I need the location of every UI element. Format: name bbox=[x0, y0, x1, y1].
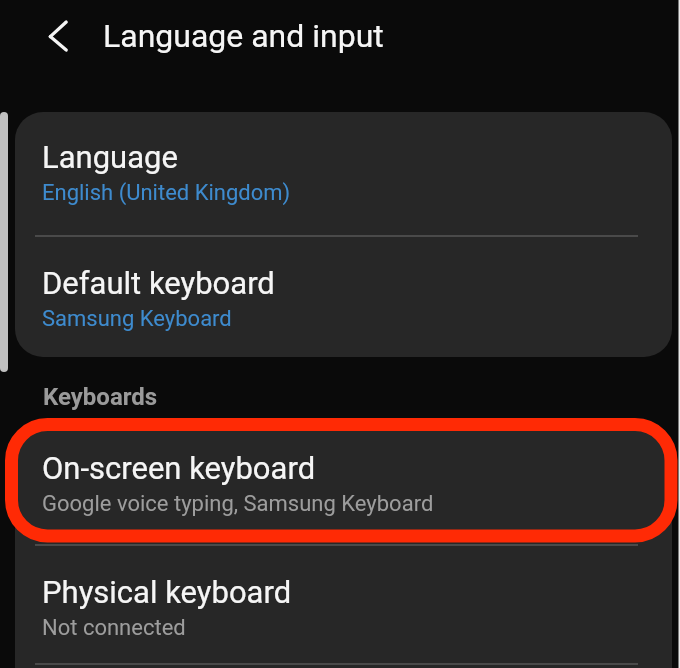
staticText: Samsung Keyboard bbox=[42, 306, 232, 332]
staticText: Keyboards bbox=[43, 383, 158, 411]
button[interactable]: Physical keyboard bbox=[15, 546, 672, 663]
staticText: Default keyboard bbox=[42, 265, 275, 301]
staticText: Physical keyboard bbox=[42, 574, 292, 610]
staticText: Not connected bbox=[42, 615, 186, 641]
button[interactable]: On-screen keyboard bbox=[15, 430, 672, 544]
staticText: On-screen keyboard bbox=[42, 450, 316, 486]
staticText: Language and input bbox=[103, 17, 384, 55]
staticText: Google voice typing, Samsung Keyboard bbox=[42, 491, 434, 517]
button[interactable]: Back bbox=[36, 12, 82, 58]
button[interactable]: Language bbox=[15, 112, 672, 235]
staticText: Language bbox=[42, 139, 178, 175]
staticText: English (United Kingdom) bbox=[42, 180, 291, 206]
button[interactable]: Default keyboard bbox=[15, 237, 672, 357]
